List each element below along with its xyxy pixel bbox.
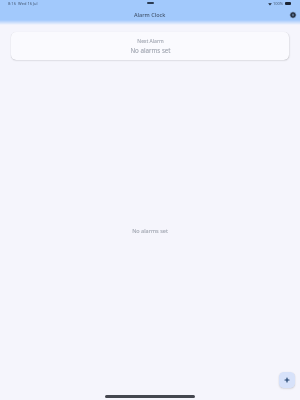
staticText: Alarm Clock [134,11,166,18]
button[interactable]: Next Alarm [11,32,289,60]
staticText: No alarms set [132,227,168,234]
staticText: No alarms set [130,46,171,54]
staticText: 100% [273,1,284,6]
button[interactable]: Settings [286,8,300,22]
button[interactable]: Add alarm [279,372,295,388]
staticText: Next Alarm [137,38,164,45]
staticText: 8:16 Wed 16 Jul [8,1,38,6]
